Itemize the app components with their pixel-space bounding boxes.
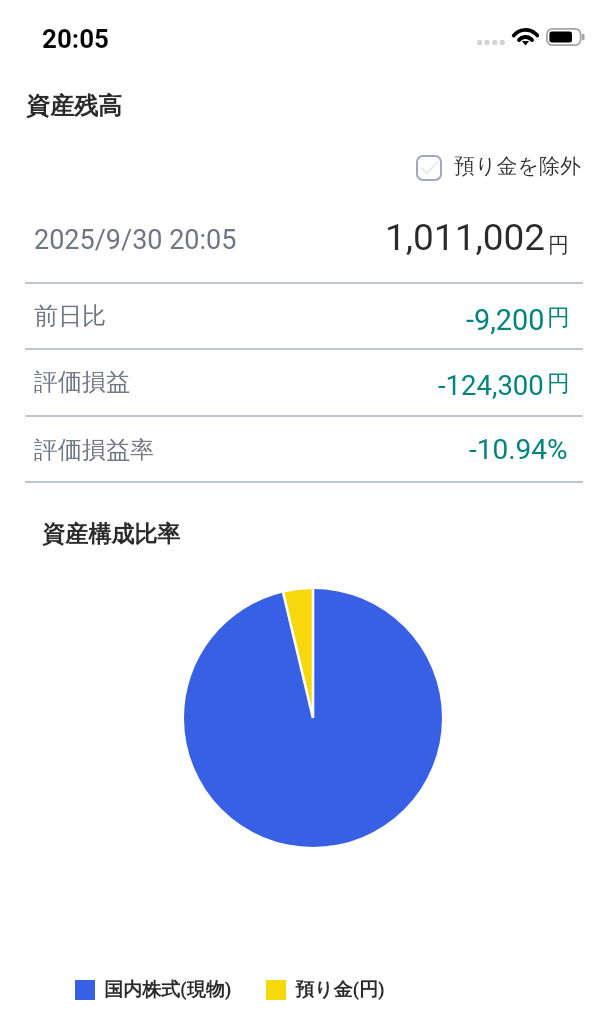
- staticText: 2025/9/30 20:05: [34, 224, 237, 256]
- button[interactable]: [0, 283, 609, 348]
- staticText: 国内株式(現物): [104, 978, 232, 1002]
- staticText: 1,011,002: [385, 216, 546, 259]
- staticText: -10.94%: [469, 433, 568, 466]
- staticText: 円: [547, 303, 570, 332]
- button[interactable]: [0, 349, 609, 415]
- staticText: 20:05: [42, 24, 110, 54]
- staticText: 評価損益: [34, 367, 130, 397]
- button[interactable]: 国内株式(現物): [67, 970, 240, 1010]
- staticText: 評価損益率: [34, 435, 154, 465]
- staticText: 資産残高: [26, 91, 122, 121]
- button[interactable]: 預り金を除外: [408, 147, 589, 189]
- button[interactable]: [0, 210, 609, 282]
- staticText: 資産構成比率: [42, 520, 180, 549]
- staticText: -124,300: [438, 369, 544, 401]
- button[interactable]: 預り金(円): [258, 970, 393, 1010]
- staticText: -9,200: [466, 303, 545, 337]
- staticText: 円: [548, 232, 569, 258]
- staticText: 前日比: [34, 301, 106, 331]
- staticText: 円: [547, 369, 570, 398]
- staticText: 預り金(円): [295, 978, 385, 1002]
- button[interactable]: [0, 416, 609, 481]
- staticText: 預り金を除外: [454, 153, 581, 179]
